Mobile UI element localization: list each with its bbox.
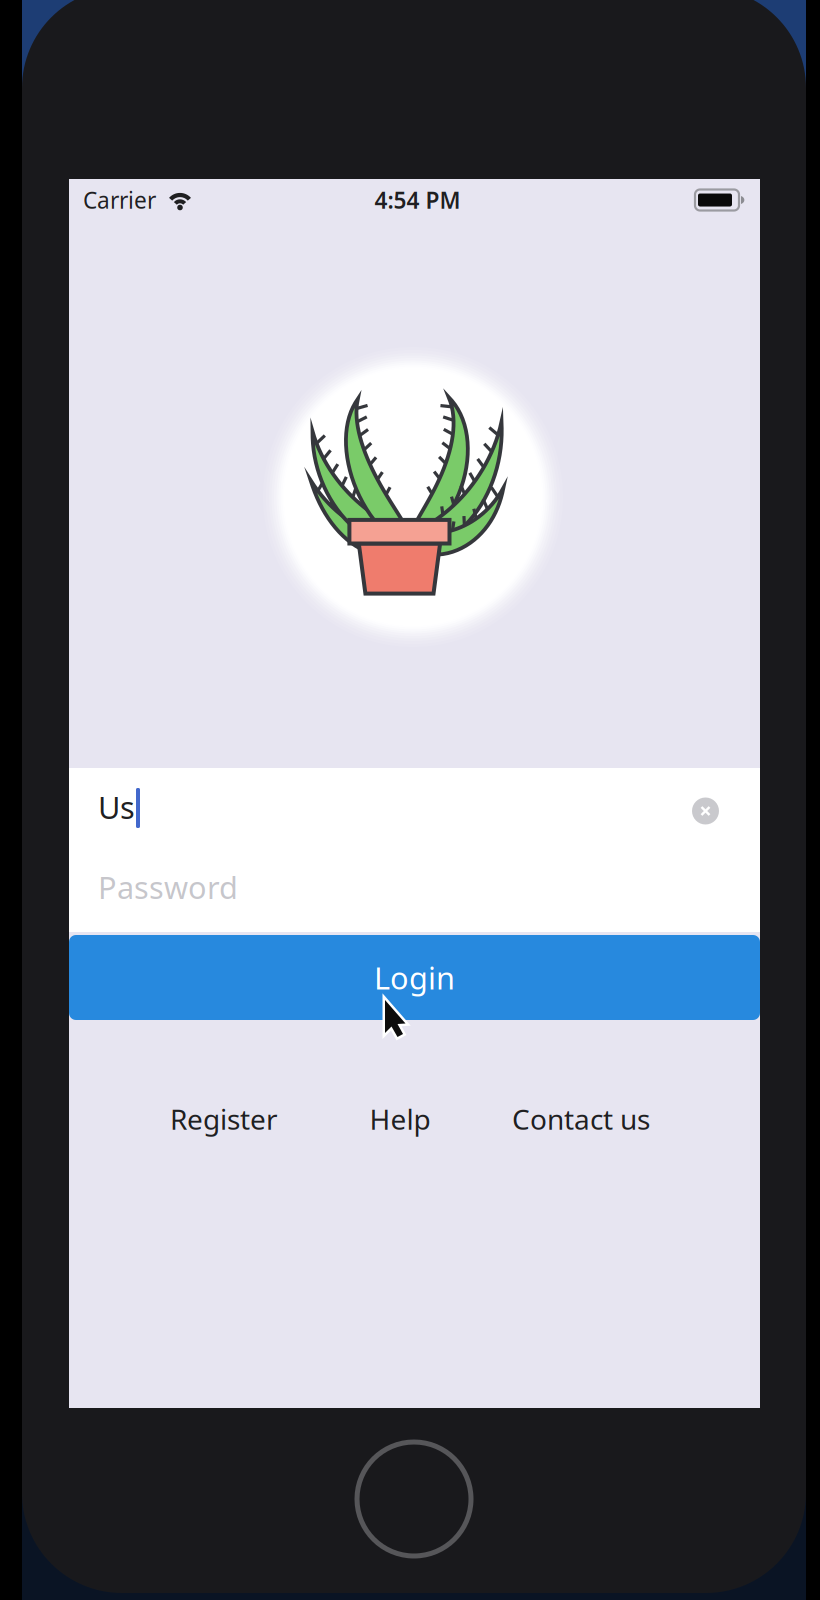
staticText: Contact us [512,1100,650,1138]
button[interactable]: Password [69,848,760,926]
staticText: Register [170,1100,278,1138]
staticText: Login [374,957,455,998]
button[interactable]: Help [315,1092,485,1146]
button[interactable]: Login [69,935,760,1020]
button[interactable]: Us [69,766,760,848]
staticText: Password [98,867,238,907]
staticText: 4:54 PM [374,185,460,215]
button[interactable]: Register [139,1092,309,1146]
staticText: Help [369,1100,430,1138]
staticText: Us [98,787,135,827]
button[interactable]: Contact us [496,1092,666,1146]
staticText: Carrier [83,185,156,215]
